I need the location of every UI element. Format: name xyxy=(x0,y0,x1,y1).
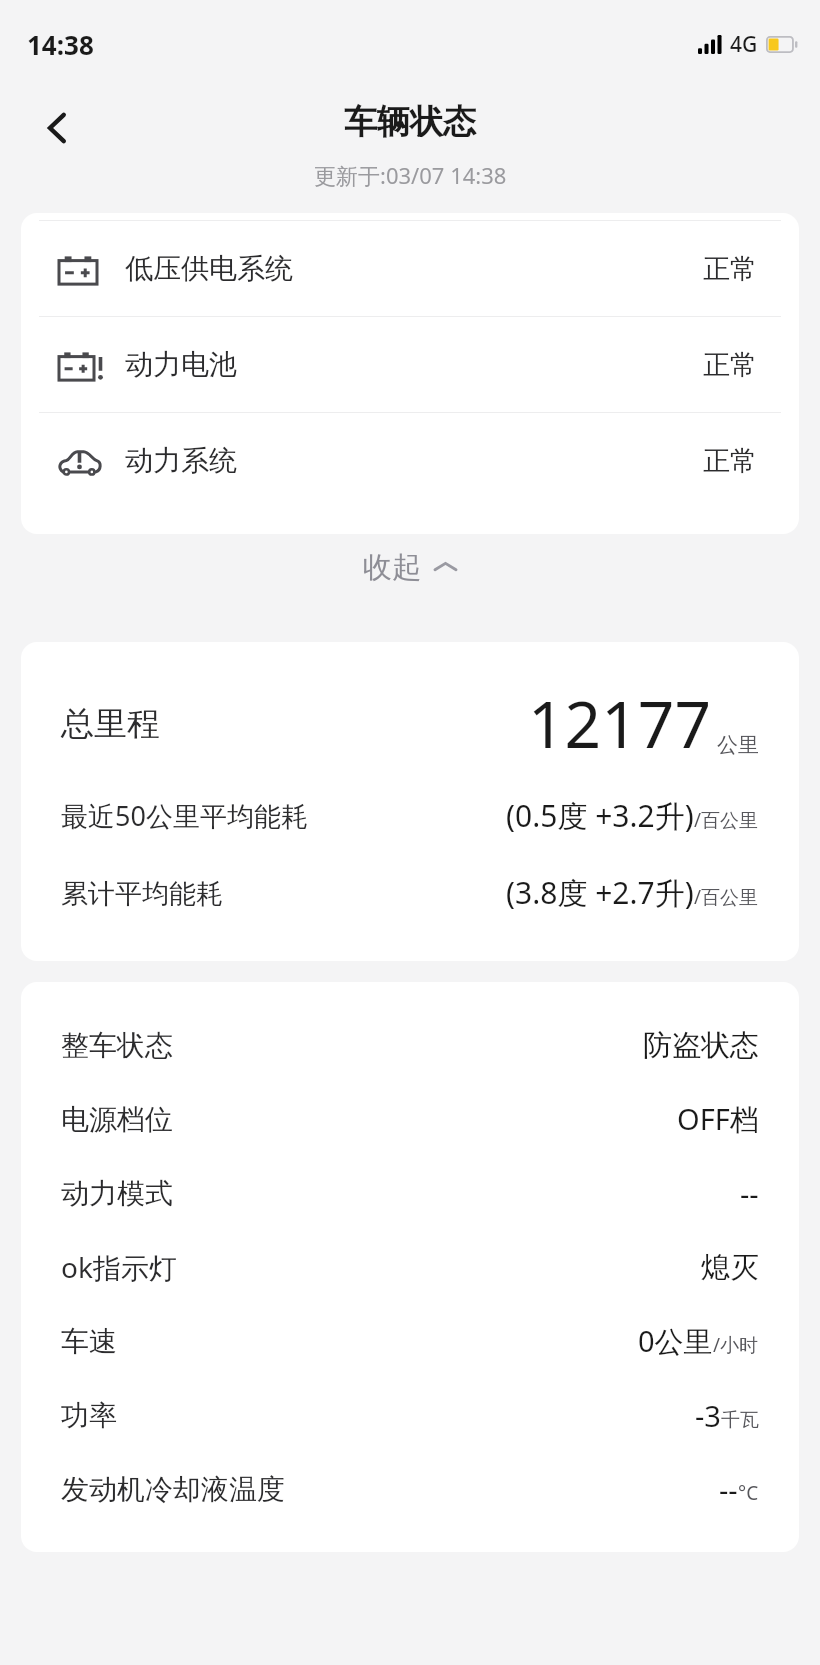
staticText: 0公里 xyxy=(638,1321,713,1361)
staticText: 累计平均能耗 xyxy=(61,877,223,911)
staticText: 14:38 xyxy=(27,27,94,62)
staticText: 动力电池 xyxy=(125,347,237,382)
staticText: °C xyxy=(738,1480,759,1506)
staticText: 动力模式 xyxy=(61,1176,173,1211)
staticText: (0.5度 +3.2升) xyxy=(506,795,694,836)
staticText: 电源档位 xyxy=(61,1102,173,1137)
staticText: 动力系统 xyxy=(125,443,237,478)
staticText: 发动机冷却液温度 xyxy=(61,1472,285,1507)
button[interactable]: 低压供电系统 xyxy=(21,221,799,316)
staticText: 正常 xyxy=(703,444,757,478)
staticText: -- xyxy=(740,1174,759,1213)
staticText: 防盗状态 xyxy=(643,1027,759,1064)
button[interactable]: 收起 xyxy=(0,534,820,600)
staticText: 收起 xyxy=(363,549,421,586)
staticText: 总里程 xyxy=(61,703,160,745)
staticText: 12177 xyxy=(528,680,712,767)
staticText: -3 xyxy=(695,1396,721,1435)
staticText: 低压供电系统 xyxy=(125,251,293,286)
button[interactable]: Back xyxy=(20,90,96,166)
staticText: 整车状态 xyxy=(61,1028,173,1063)
staticText: 更新于:03/07 14:38 xyxy=(314,160,507,190)
staticText: 最近50公里平均能耗 xyxy=(61,797,308,834)
button[interactable]: 动力电池 xyxy=(21,317,799,412)
staticText: 车速 xyxy=(61,1324,117,1359)
staticText: 熄灭 xyxy=(701,1249,759,1286)
staticText: 公里 xyxy=(717,732,759,758)
button[interactable]: 动力系统 xyxy=(21,413,799,508)
staticText: /百公里 xyxy=(694,884,759,910)
staticText: 车辆状态 xyxy=(344,101,476,143)
staticText: 正常 xyxy=(703,252,757,286)
staticText: -- xyxy=(719,1470,738,1509)
staticText: /百公里 xyxy=(694,807,759,833)
staticText: /小时 xyxy=(713,1332,759,1358)
staticText: ok指示灯 xyxy=(61,1248,177,1286)
staticText: 正常 xyxy=(703,348,757,382)
staticText: (3.8度 +2.7升) xyxy=(506,872,694,913)
staticText: 千瓦 xyxy=(721,1408,759,1432)
staticText: 功率 xyxy=(61,1398,117,1433)
staticText: 4G xyxy=(730,30,758,59)
staticText: OFF档 xyxy=(677,1099,759,1139)
